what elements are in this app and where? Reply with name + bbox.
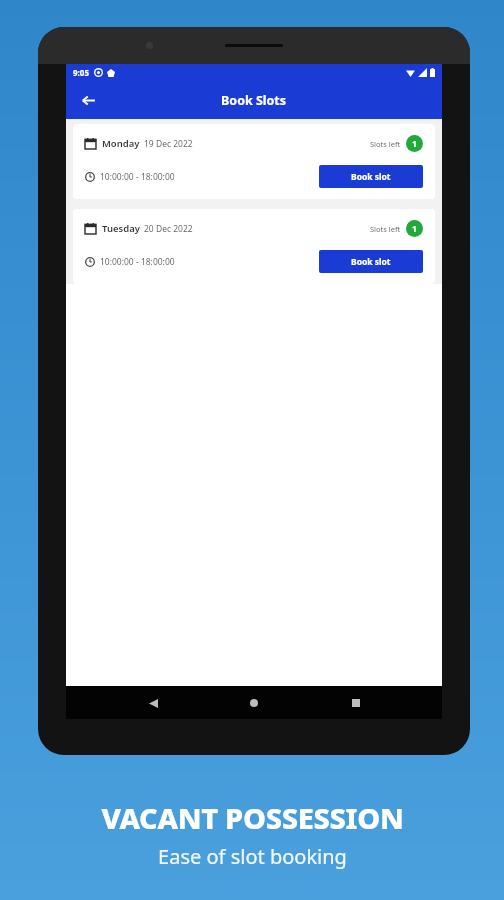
staticText: VACANT POSSESSION [101, 798, 404, 837]
staticText: Slots left [370, 224, 401, 234]
button[interactable]: Book slot [319, 250, 423, 273]
button[interactable]: Back [74, 86, 102, 114]
staticText: Book slot [351, 171, 391, 183]
staticText: Slots left [370, 139, 401, 149]
button[interactable]: Recent apps [341, 688, 371, 718]
button[interactable]: Back [138, 688, 168, 718]
button[interactable]: Monday [73, 124, 435, 199]
staticText: Monday [102, 137, 140, 150]
staticText: 19 Dec 2022 [144, 138, 193, 150]
staticText: 10:00:00 - 18:00:00 [100, 256, 175, 268]
staticText: 10:00:00 - 18:00:00 [100, 171, 175, 183]
button[interactable]: Tuesday [73, 209, 435, 284]
staticText: Book slot [351, 256, 391, 268]
button[interactable]: Book slot [319, 165, 423, 188]
button[interactable]: Home [239, 688, 269, 718]
staticText: Book Slots [221, 92, 287, 109]
staticText: 1 [412, 223, 417, 235]
staticText: Tuesday [102, 222, 140, 235]
staticText: 20 Dec 2022 [144, 223, 193, 235]
staticText: 1 [412, 138, 417, 150]
staticText: 9:05 [73, 67, 89, 78]
staticText: Ease of slot booking [158, 843, 347, 870]
